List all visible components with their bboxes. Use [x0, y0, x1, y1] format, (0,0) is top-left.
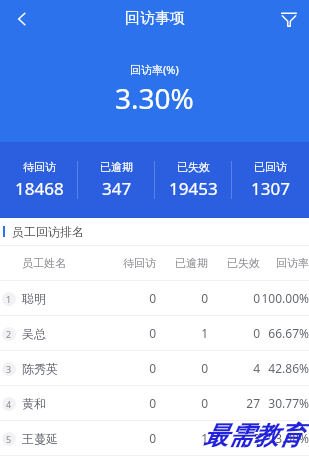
staticText: 66.67% — [268, 325, 309, 341]
staticText: 30.77% — [268, 395, 309, 411]
staticText: 已回访 — [254, 160, 287, 174]
staticText: 23.08% — [268, 430, 309, 446]
button[interactable]: 已回访 — [232, 142, 309, 218]
staticText: 员工回访排名 — [12, 224, 84, 239]
staticText: 待回访 — [123, 256, 156, 270]
staticText: 最需教育 — [203, 420, 303, 451]
button[interactable]: 1 — [0, 281, 309, 315]
staticText: 5 — [6, 433, 12, 445]
staticText: 19453 — [169, 177, 218, 200]
button[interactable]: Filter — [269, 0, 309, 38]
staticText: 待回访 — [23, 160, 56, 174]
staticText: 已逾期 — [100, 160, 133, 174]
staticText: 347 — [102, 177, 132, 200]
staticText: 0 — [149, 430, 156, 446]
staticText: 27 — [246, 395, 260, 411]
staticText: 2 — [6, 328, 12, 340]
staticText: 聪明 — [22, 291, 46, 306]
staticText: 回访率(%) — [130, 62, 179, 77]
staticText: 0 — [201, 395, 208, 411]
staticText: 0 — [201, 360, 208, 376]
button[interactable]: 待回访 — [0, 142, 78, 218]
button[interactable]: 2 — [0, 316, 309, 350]
staticText: 0 — [149, 325, 156, 341]
staticText: 18468 — [15, 177, 64, 200]
staticText: 黄和 — [22, 396, 46, 411]
staticText: 0 — [149, 290, 156, 306]
button[interactable]: 4 — [0, 386, 309, 420]
staticText: 王蔓延 — [22, 431, 58, 446]
staticText: 1 — [201, 430, 208, 446]
staticText: 回访事项 — [125, 9, 185, 28]
staticText: 0 — [253, 290, 260, 306]
staticText: 0 — [253, 325, 260, 341]
staticText: 3.30% — [115, 79, 194, 117]
staticText: 3 — [253, 430, 260, 446]
staticText: 吴总 — [22, 326, 46, 341]
staticText: 员工姓名 — [22, 256, 66, 270]
staticText: 4 — [253, 360, 260, 376]
button[interactable]: 已逾期 — [78, 142, 155, 218]
staticText: 已失效 — [177, 160, 210, 174]
staticText: 0 — [201, 290, 208, 306]
staticText: 陈秀英 — [22, 361, 58, 376]
staticText: 100.00% — [261, 290, 309, 306]
staticText: 1307 — [251, 177, 290, 200]
staticText: 1 — [201, 325, 208, 341]
staticText: 已逾期 — [175, 256, 208, 270]
button[interactable]: 已失效 — [155, 142, 232, 218]
staticText: 已失效 — [227, 256, 260, 270]
button[interactable]: Back — [0, 0, 44, 38]
staticText: 0 — [149, 395, 156, 411]
staticText: 4 — [6, 398, 12, 410]
staticText: 1 — [6, 293, 12, 305]
button[interactable]: 5 — [0, 421, 309, 455]
staticText: 3 — [6, 363, 12, 375]
staticText: 回访率 — [276, 256, 309, 270]
staticText: 42.86% — [268, 360, 309, 376]
staticText: 0 — [149, 360, 156, 376]
button[interactable]: 3 — [0, 351, 309, 385]
button[interactable]: 员工姓名 — [0, 246, 309, 280]
